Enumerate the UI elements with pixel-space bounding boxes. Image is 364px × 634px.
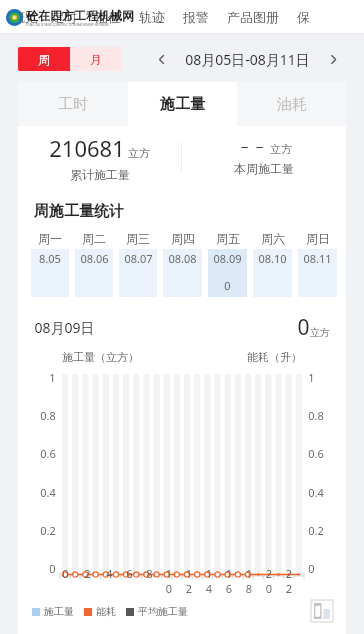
- staticText: 0.6: [308, 446, 324, 461]
- staticText: 8: [146, 566, 153, 581]
- staticText: 08月05日-08月11日: [185, 50, 310, 69]
- staticText: 工时: [58, 95, 88, 114]
- staticText: 08.10: [258, 251, 287, 266]
- staticText: 油位: [95, 9, 121, 25]
- staticText: 保: [297, 9, 310, 25]
- staticText: 14: [204, 566, 214, 596]
- button[interactable]: －－: [182, 138, 346, 176]
- staticText: 能耗（升）: [247, 350, 302, 364]
- button[interactable]: 周五: [205, 231, 250, 297]
- staticText: 月: [90, 52, 102, 67]
- button[interactable]: 上一周: [148, 46, 174, 72]
- staticText: 210681: [49, 133, 125, 163]
- staticText: 0.2: [308, 523, 324, 538]
- staticText: 08.11: [303, 251, 332, 266]
- staticText: 平均施工量: [138, 605, 188, 618]
- staticText: 周四: [171, 231, 195, 246]
- staticText: 0.4: [40, 485, 56, 500]
- button[interactable]: 工时: [18, 82, 128, 126]
- staticText: 4: [106, 566, 113, 581]
- staticText: 产品图册: [227, 9, 279, 25]
- staticText: 周五: [216, 231, 240, 246]
- button[interactable]: 油位: [86, 9, 130, 25]
- button[interactable]: 平均施工量: [126, 605, 188, 618]
- staticText: 周六: [261, 231, 285, 246]
- button[interactable]: 施工量: [128, 82, 237, 126]
- staticText: 0.2: [40, 523, 56, 538]
- staticText: 轨迹: [139, 9, 165, 25]
- staticText: 施工量: [44, 605, 74, 618]
- staticText: 0.8: [40, 408, 56, 423]
- staticText: 22: [284, 566, 294, 596]
- button[interactable]: 定时: [42, 9, 86, 25]
- button[interactable]: 210681: [18, 133, 181, 182]
- staticText: 施工量（立方）: [62, 350, 139, 364]
- button[interactable]: 月: [70, 47, 122, 71]
- staticText: 周日: [306, 231, 330, 246]
- button[interactable]: 周四: [160, 231, 205, 297]
- staticText: 08.06: [80, 251, 109, 266]
- staticText: 0.4: [308, 485, 324, 500]
- staticText: 16: [224, 566, 234, 596]
- staticText: 18: [244, 566, 254, 596]
- button[interactable]: 轨迹: [130, 9, 174, 25]
- staticText: 0: [224, 278, 231, 293]
- button[interactable]: 08月05日-08月11日: [174, 50, 320, 69]
- staticText: 12: [184, 566, 194, 596]
- staticText: TONG ZAI SI FANG CONSTRUCTION MACHINERY …: [26, 23, 109, 27]
- staticText: 2: [84, 566, 91, 581]
- staticText: 立方: [128, 146, 150, 160]
- staticText: 1: [49, 370, 56, 385]
- staticText: 能耗: [96, 605, 116, 618]
- staticText: 0: [297, 313, 310, 342]
- staticText: 0: [308, 561, 315, 576]
- staticText: －－: [237, 138, 267, 157]
- staticText: 油耗: [277, 95, 307, 114]
- staticText: 周一: [38, 231, 62, 246]
- staticText: 本周施工量: [234, 161, 294, 176]
- button[interactable]: 下一周: [320, 46, 346, 72]
- staticText: 周二: [82, 231, 106, 246]
- button[interactable]: 周日: [295, 231, 340, 297]
- staticText: 08.07: [124, 251, 153, 266]
- button[interactable]: 周六: [250, 231, 295, 297]
- staticText: 立方: [310, 326, 330, 339]
- button[interactable]: 周: [18, 47, 70, 71]
- button[interactable]: 周一: [28, 231, 72, 297]
- button[interactable]: 油耗: [237, 82, 346, 126]
- staticText: 20: [264, 566, 274, 596]
- staticText: 0: [62, 566, 69, 581]
- staticText: 1: [308, 370, 315, 385]
- button[interactable]: 概览: [8, 9, 42, 25]
- staticText: 08.08: [168, 251, 197, 266]
- staticText: 周: [38, 52, 50, 67]
- button[interactable]: 施工量: [32, 605, 74, 618]
- staticText: 08.09: [213, 251, 242, 266]
- staticText: 周施工量统计: [34, 202, 124, 221]
- staticText: 累计施工量: [70, 167, 130, 182]
- button[interactable]: 周二: [72, 231, 116, 297]
- staticText: 0.8: [308, 408, 324, 423]
- button[interactable]: 切换图表类型: [310, 599, 334, 623]
- staticText: 周三: [126, 231, 150, 246]
- button[interactable]: 产品图册: [218, 9, 288, 25]
- staticText: 8.05: [39, 251, 61, 266]
- staticText: 08月09日: [34, 318, 95, 337]
- button[interactable]: 报警: [174, 9, 218, 25]
- staticText: 报警: [183, 9, 209, 25]
- staticText: 立方: [270, 142, 292, 156]
- button[interactable]: 周三: [116, 231, 160, 297]
- staticText: 6: [126, 566, 133, 581]
- staticText: 砼在四方工程机械网: [26, 8, 134, 23]
- staticText: 0: [49, 561, 56, 576]
- button[interactable]: 保: [288, 9, 319, 25]
- staticText: 施工量: [160, 95, 205, 114]
- staticText: 定时: [51, 9, 77, 25]
- staticText: 概览: [12, 9, 38, 25]
- staticText: 10: [164, 566, 174, 596]
- button[interactable]: 能耗: [84, 605, 116, 618]
- staticText: 0.6: [40, 446, 56, 461]
